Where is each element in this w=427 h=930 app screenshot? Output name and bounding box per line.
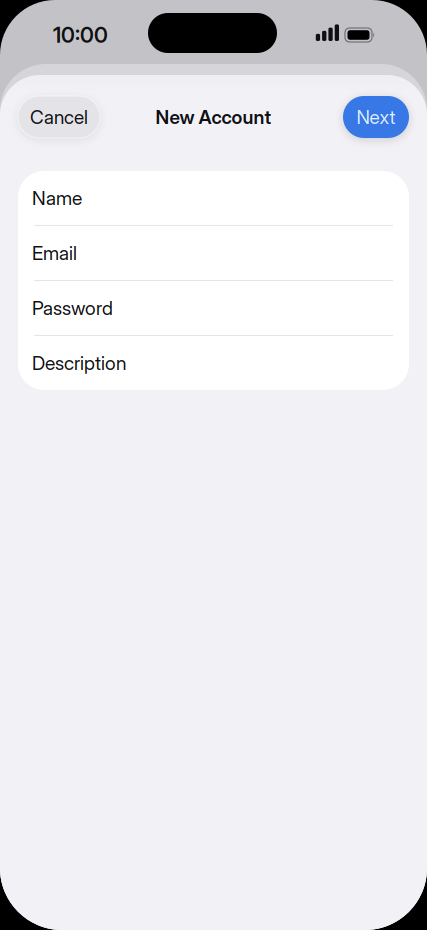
button[interactable]: Description — [18, 336, 409, 390]
staticText: Name — [32, 187, 82, 209]
staticText: Email — [32, 242, 77, 264]
button[interactable]: Cancel — [18, 96, 100, 138]
staticText: Description — [32, 352, 127, 374]
button[interactable]: Password — [18, 281, 409, 335]
staticText: 10:00 — [53, 22, 108, 48]
staticText: Cancel — [30, 106, 88, 128]
button[interactable]: Email — [18, 226, 409, 280]
button[interactable]: Next — [343, 96, 409, 138]
button[interactable]: Name — [18, 171, 409, 225]
staticText: Next — [356, 106, 395, 128]
staticText: Password — [32, 297, 113, 319]
staticText: New Account — [155, 106, 271, 128]
